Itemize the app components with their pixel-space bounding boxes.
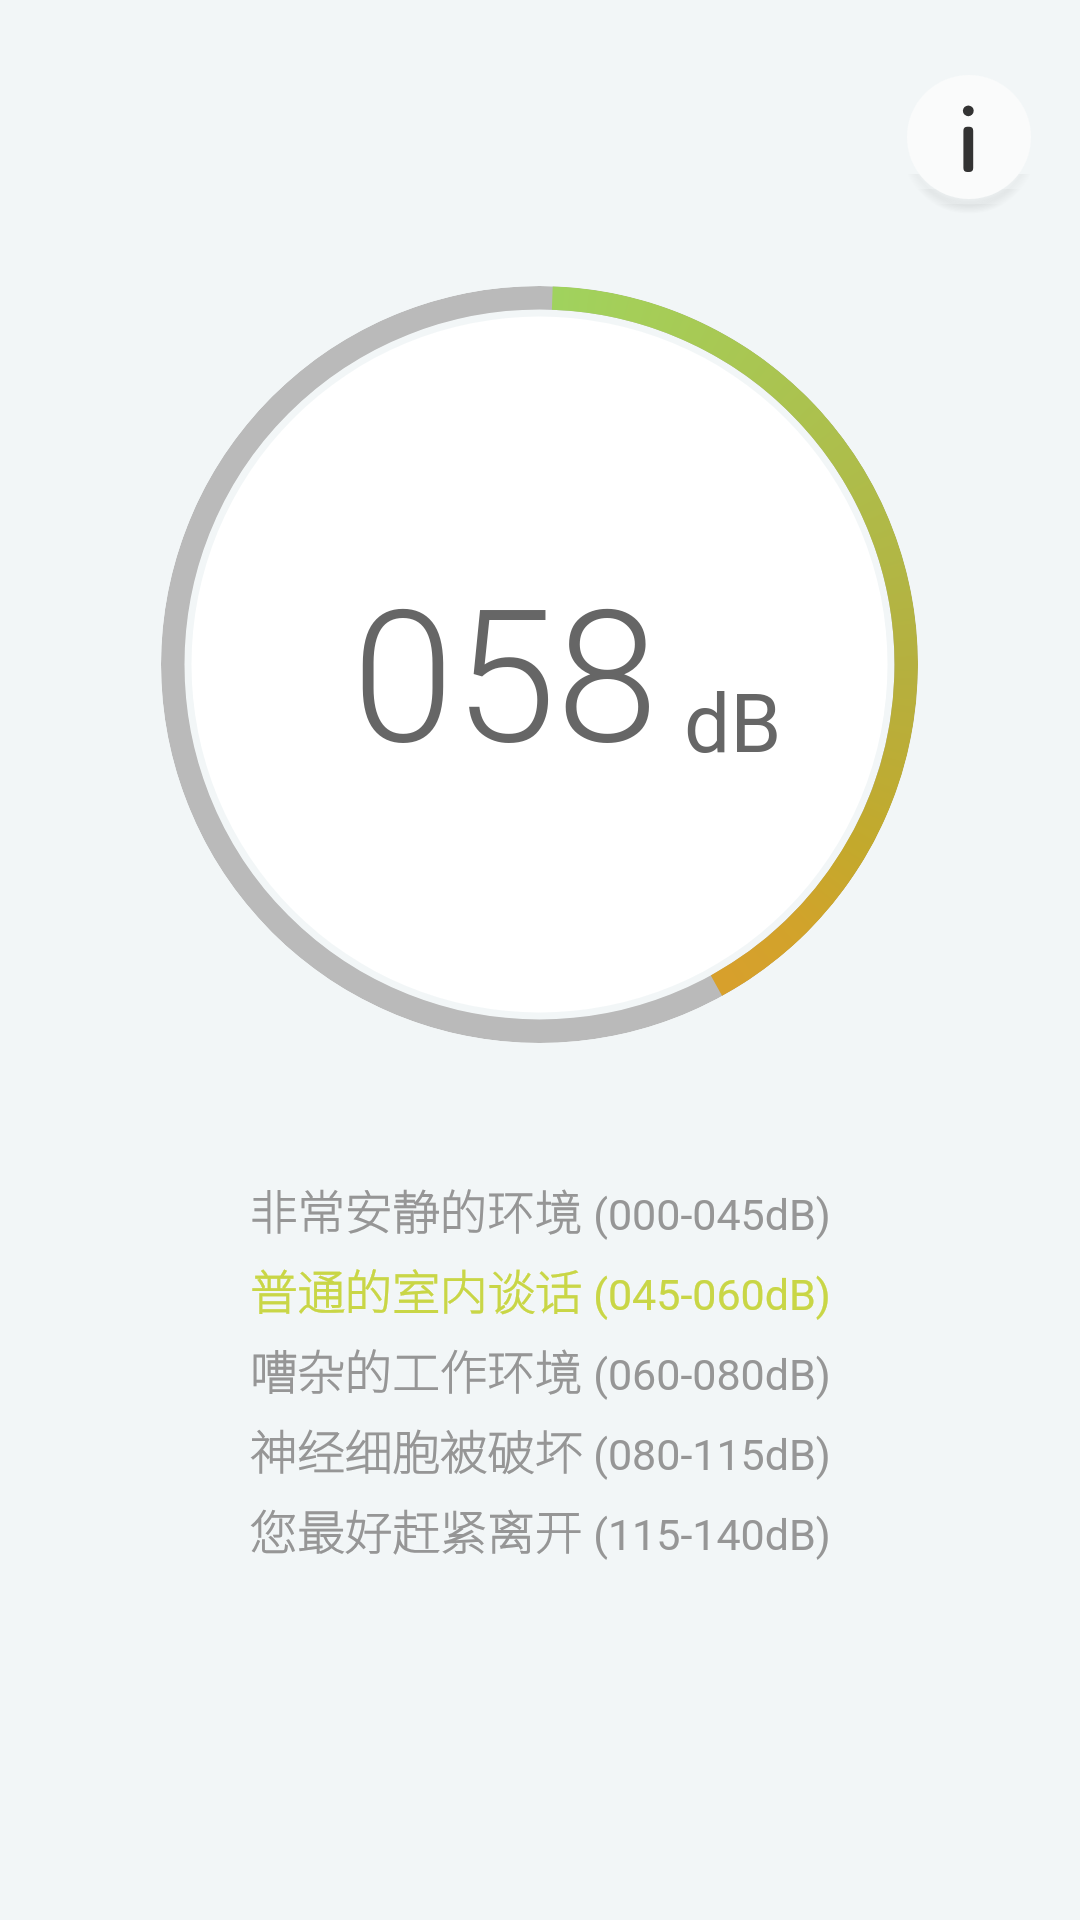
staticText: 神经细胞被破坏 (080-115dB): [250, 1415, 831, 1484]
button[interactable]: 普通的室内谈话 (045-060dB): [250, 1249, 831, 1329]
button[interactable]: 非常安静的环境 (000-045dB): [250, 1169, 831, 1249]
staticText: dB: [684, 676, 782, 772]
button[interactable]: 神经细胞被破坏 (080-115dB): [250, 1409, 831, 1489]
button[interactable]: Info: [907, 75, 1031, 199]
staticText: 非常安静的环境 (000-045dB): [250, 1175, 831, 1244]
staticText: 嘈杂的工作环境 (060-080dB): [250, 1335, 831, 1404]
staticText: 普通的室内谈话 (045-060dB): [250, 1255, 831, 1324]
button[interactable]: Sound level 58 decibels: [161, 286, 918, 1043]
staticText: 058: [352, 570, 659, 786]
staticText: 您最好赶紧离开 (115-140dB): [250, 1495, 831, 1564]
button[interactable]: 您最好赶紧离开 (115-140dB): [250, 1489, 831, 1569]
button[interactable]: 嘈杂的工作环境 (060-080dB): [250, 1329, 831, 1409]
